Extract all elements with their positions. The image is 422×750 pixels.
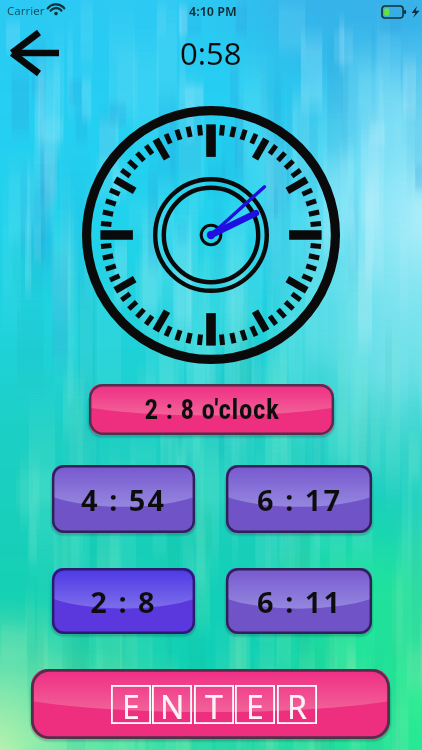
button[interactable]: 2 : 8 <box>52 568 195 634</box>
staticText: Carrier <box>7 3 45 19</box>
button[interactable]: 4 : 54 <box>52 465 195 533</box>
staticText: E <box>122 685 140 724</box>
staticText: 6 : 17 <box>257 480 342 519</box>
button[interactable]: 6 : 11 <box>226 568 372 634</box>
staticText: R <box>287 685 307 724</box>
button[interactable]: E <box>31 669 390 739</box>
staticText: N <box>160 685 185 724</box>
staticText: 2 : 8 o'clock <box>144 394 280 426</box>
staticText: 4:10 PM <box>189 3 237 20</box>
staticText: 6 : 11 <box>257 582 342 621</box>
button[interactable]: 2 : 8 o'clock <box>89 384 334 435</box>
button[interactable]: 6 : 17 <box>226 465 372 533</box>
staticText: E <box>246 685 264 724</box>
staticText: 4 : 54 <box>81 480 166 519</box>
staticText: 2 : 8 <box>90 582 157 621</box>
staticText: T <box>205 685 223 724</box>
button[interactable]: Back <box>8 28 64 78</box>
staticText: 0:58 <box>180 32 242 74</box>
